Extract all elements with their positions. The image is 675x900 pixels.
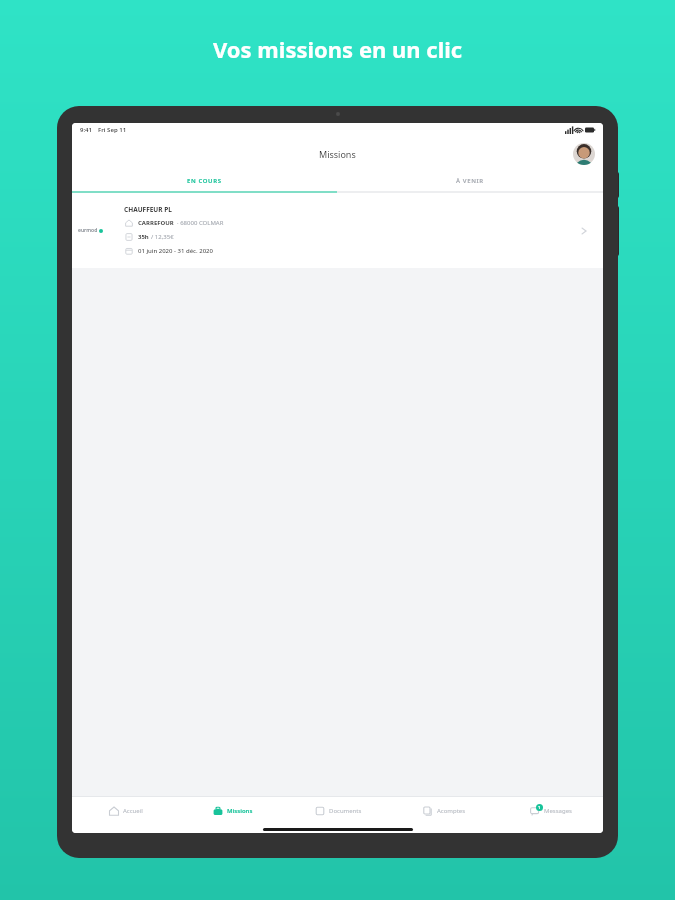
button[interactable]: Documents (285, 797, 391, 825)
staticText: Missions (227, 807, 253, 815)
staticText: Accueil (123, 807, 143, 815)
staticText: CARREFOUR (138, 219, 174, 227)
staticText: Acomptes (437, 807, 466, 815)
button[interactable]: 1 (497, 797, 603, 825)
staticText: Messages (544, 807, 572, 815)
staticText: 01 juin 2020 - 31 déc. 2020 (138, 247, 213, 255)
button[interactable]: Accueil (72, 797, 179, 825)
staticText: Vos missions en un clic (213, 34, 463, 64)
button[interactable]: Acomptes (391, 797, 497, 825)
staticText: Documents (329, 807, 362, 815)
staticText: / 12,35€ (151, 233, 174, 241)
staticText: · 68000 COLMAR (177, 219, 224, 227)
staticText: 1 (538, 805, 541, 810)
staticText: CHAUFFEUR PL (124, 205, 172, 214)
staticText: Fri Sep 11 (98, 126, 127, 134)
button[interactable]: eurmod (72, 193, 603, 268)
button[interactable]: Missions (179, 797, 285, 825)
staticText: eurmod (78, 227, 98, 234)
button[interactable]: À VENIR (337, 171, 603, 191)
staticText: EN COURS (187, 177, 222, 185)
button[interactable]: Profil (573, 143, 595, 165)
staticText: Missions (319, 148, 356, 160)
staticText: À VENIR (456, 177, 484, 185)
staticText: 35h (138, 233, 149, 241)
staticText: 9:41 (80, 126, 92, 134)
button[interactable]: EN COURS (72, 171, 337, 191)
